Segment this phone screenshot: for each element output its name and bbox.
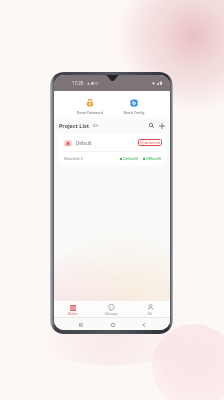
button[interactable]: Default [58, 134, 166, 165]
staticText: Message [105, 312, 118, 316]
staticText: (0) [93, 123, 98, 128]
button[interactable]: Search [147, 121, 156, 130]
staticText: Online(0) [123, 156, 138, 161]
staticText: Device [68, 312, 78, 316]
staticText: Batch Config [123, 110, 145, 115]
button[interactable]: Me [131, 302, 170, 316]
button[interactable]: Recent apps [76, 320, 85, 329]
staticText: Project List [59, 122, 90, 129]
staticText: Device(s): 0 [64, 156, 83, 161]
button[interactable]: Add project [157, 121, 166, 130]
staticText: Undelivered [140, 140, 160, 145]
staticText: Default [76, 140, 92, 146]
button[interactable]: Message [92, 302, 131, 316]
button[interactable]: Home [108, 320, 117, 329]
button[interactable]: Device [54, 303, 92, 316]
button[interactable]: Batch Config [112, 94, 156, 115]
button[interactable]: Reset Password [68, 94, 112, 115]
staticText: 17:20 [72, 80, 84, 86]
staticText: Offline(0) [146, 156, 162, 161]
staticText: Reset Password [77, 110, 103, 115]
staticText: Me [148, 312, 153, 316]
button[interactable]: Back [139, 320, 148, 329]
